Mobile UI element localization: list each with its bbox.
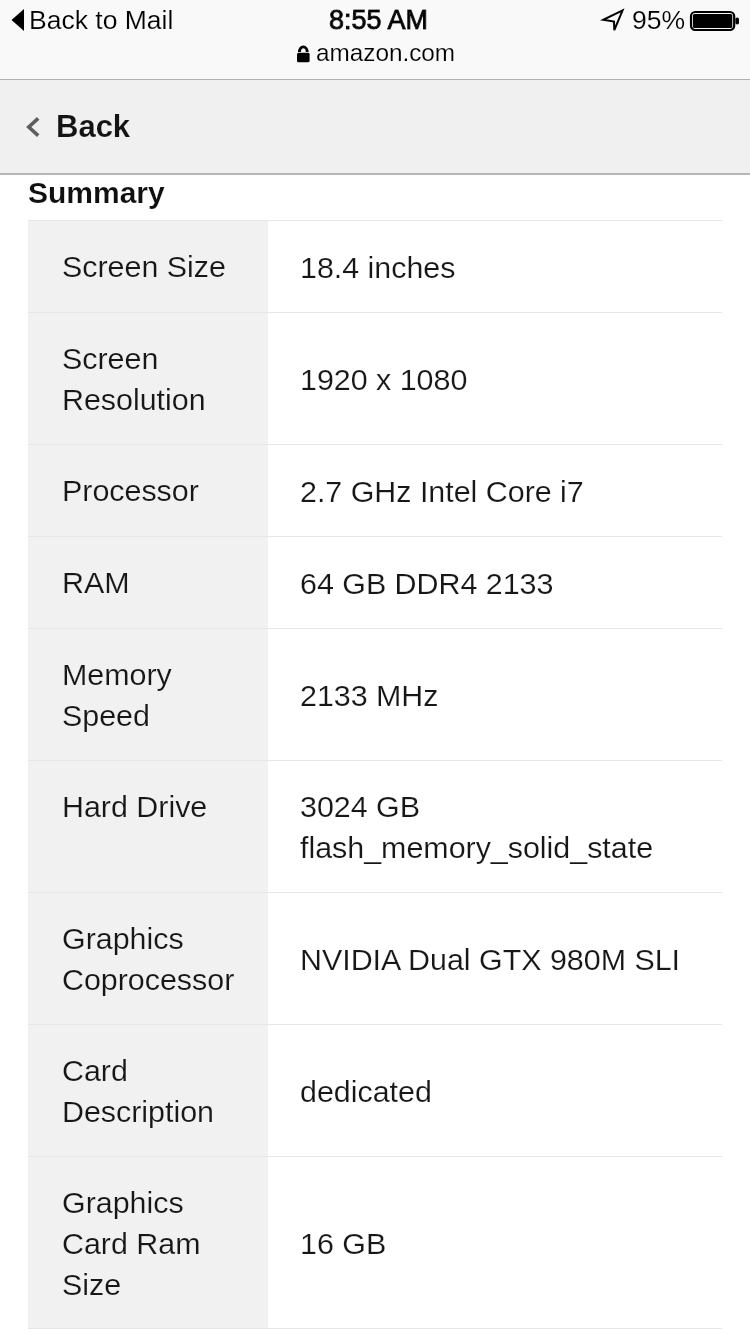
button[interactable]: Back to Mail <box>10 5 174 35</box>
staticText: 64 GB DDR4 2133 <box>300 566 554 600</box>
staticText: dedicated <box>300 1074 432 1108</box>
staticText: 2.7 GHz Intel Core i7 <box>300 474 584 508</box>
staticText: 1920 x 1080 <box>300 362 468 396</box>
staticText: Screen Resolution <box>62 341 206 416</box>
button[interactable]: RAM <box>28 537 722 628</box>
staticText: NVIDIA Dual GTX 980M SLI <box>300 942 681 976</box>
button[interactable]: Card Description <box>28 1025 722 1156</box>
staticText: Hard Drive <box>62 789 208 823</box>
button[interactable]: amazon.com <box>294 41 456 68</box>
button[interactable]: Screen Size <box>28 221 722 312</box>
staticText: Back <box>56 109 131 144</box>
button[interactable]: Back <box>0 80 149 173</box>
staticText: Summary <box>28 176 165 210</box>
other: Location services active <box>597 7 624 33</box>
button[interactable]: Processor <box>28 445 722 536</box>
staticText: Card Description <box>62 1053 215 1128</box>
staticText: 95% <box>632 5 686 35</box>
staticText: Graphics Card Ram Size <box>62 1185 201 1301</box>
staticText: Screen Size <box>62 249 226 283</box>
button[interactable]: Graphics Coprocessor <box>28 893 722 1024</box>
button[interactable]: Memory Speed <box>28 629 722 760</box>
staticText: Back to Mail <box>29 5 174 35</box>
other: Battery 95 percent <box>690 7 742 33</box>
staticText: RAM <box>62 565 130 599</box>
staticText: Graphics Coprocessor <box>62 921 235 996</box>
staticText: 16 GB <box>300 1226 387 1260</box>
staticText: Processor <box>62 473 199 507</box>
staticText: 8:55 AM <box>329 5 429 35</box>
button[interactable]: Hard Drive <box>28 761 722 892</box>
staticText: 18.4 inches <box>300 250 456 284</box>
staticText: Memory Speed <box>62 657 172 732</box>
staticText: 2133 MHz <box>300 678 439 712</box>
staticText: 8:55 AM <box>329 5 429 35</box>
staticText: 3024 GB flash_memory_solid_state <box>300 789 654 864</box>
button[interactable]: Screen Resolution <box>28 313 722 444</box>
staticText: amazon.com <box>316 39 456 66</box>
button[interactable]: Graphics Card Ram Size <box>28 1157 722 1328</box>
